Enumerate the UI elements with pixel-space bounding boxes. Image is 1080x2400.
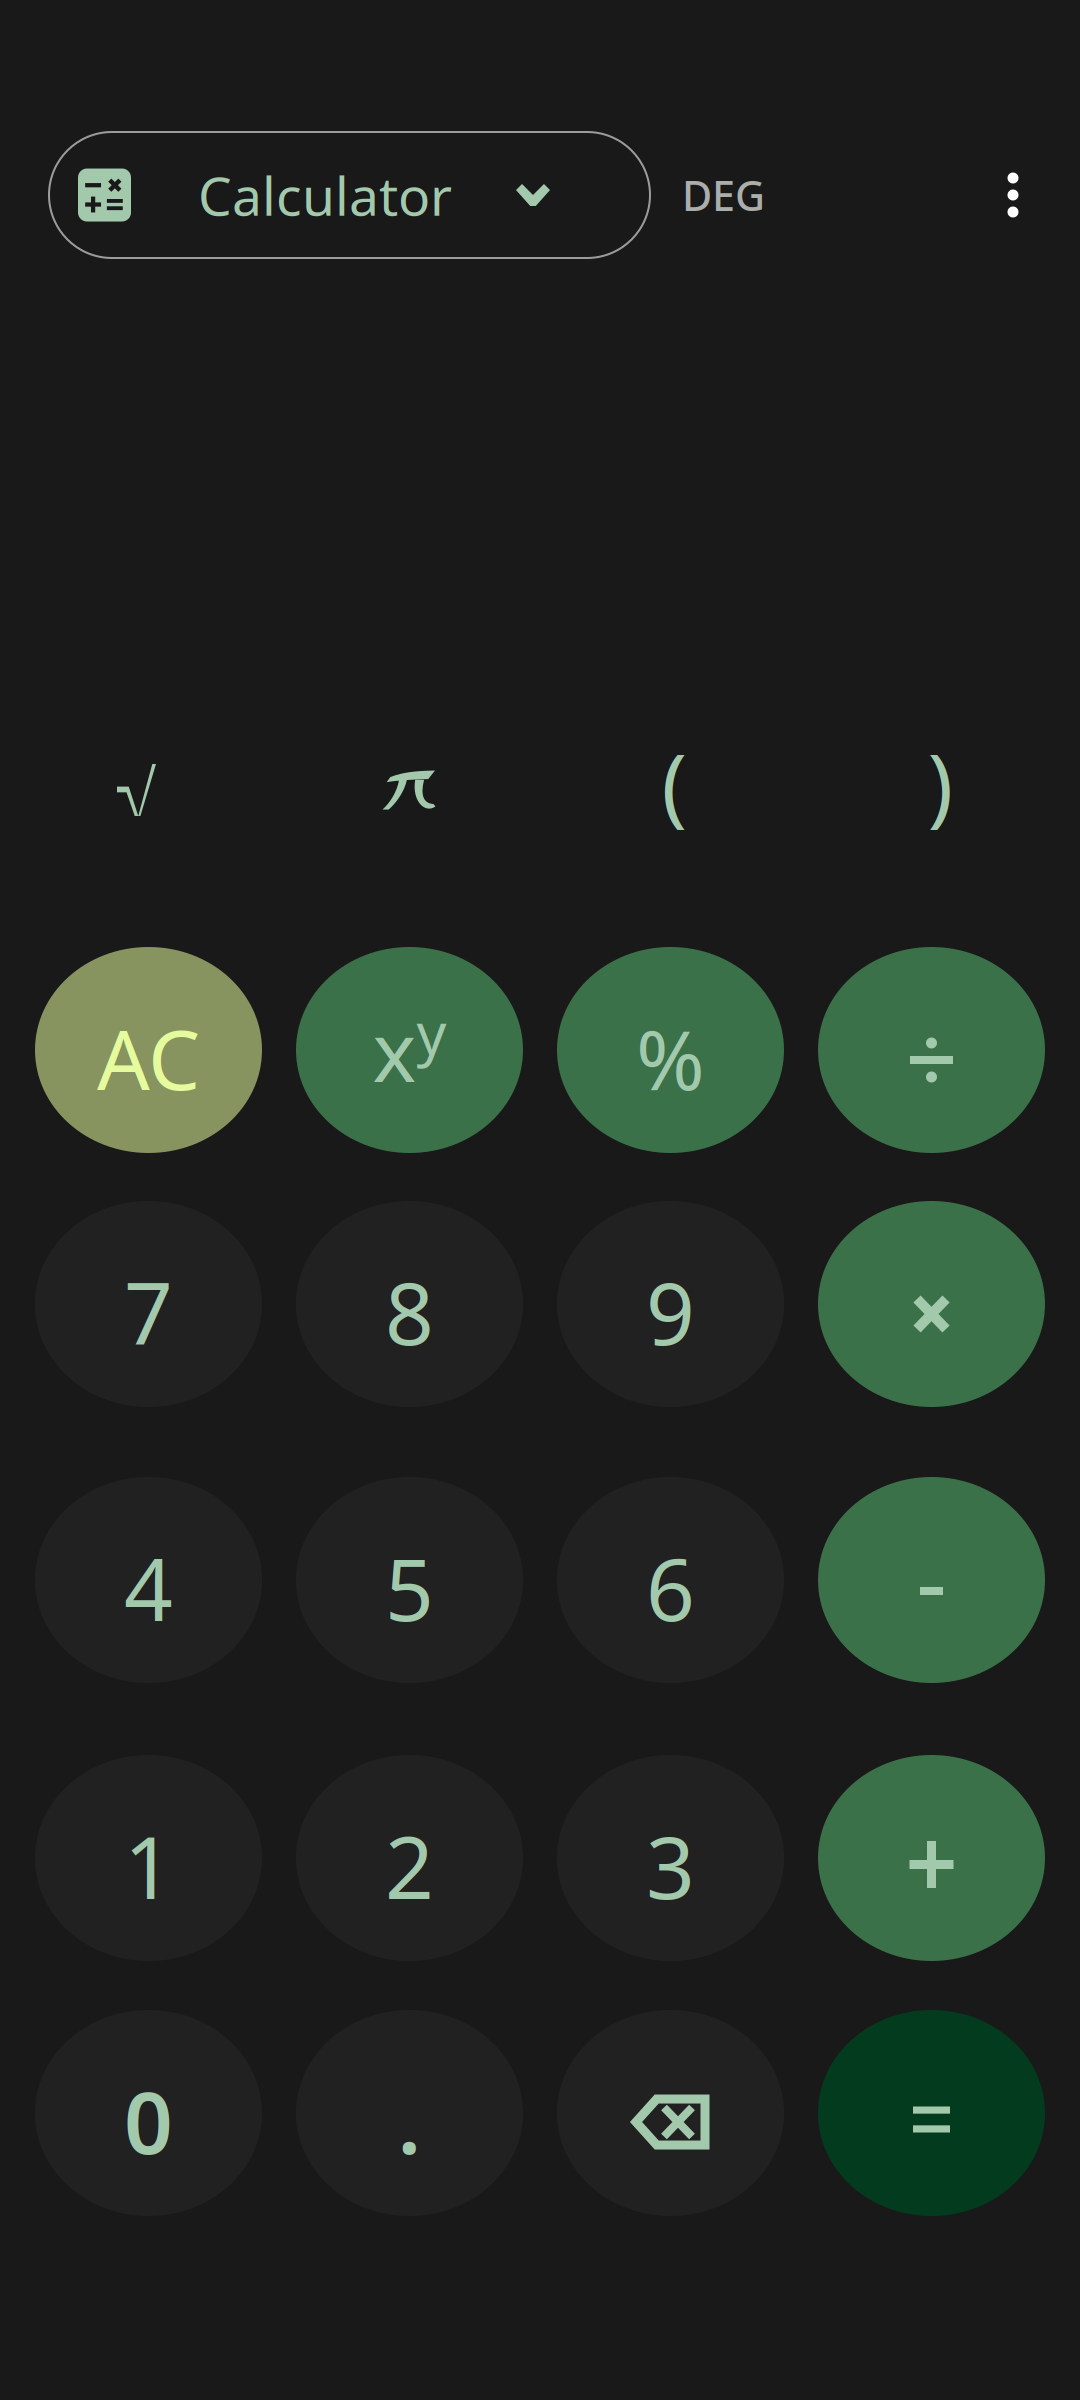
button[interactable]: ( — [557, 690, 784, 890]
button[interactable]: ) — [818, 690, 1045, 890]
staticText: % — [636, 1003, 705, 1113]
button[interactable]: 8 — [296, 1201, 523, 1407]
button[interactable]: 5 — [296, 1477, 523, 1683]
button[interactable]: AC — [35, 947, 262, 1153]
staticText: DEG — [682, 168, 765, 222]
staticText: 9 — [646, 1255, 695, 1369]
button[interactable]: Divide — [818, 947, 1045, 1153]
staticText: Calculator — [198, 160, 452, 230]
staticText: 8 — [385, 1255, 434, 1369]
button[interactable]: Calculator mode — [49, 132, 650, 258]
button[interactable]: Square root — [35, 690, 262, 890]
staticText: 2 — [385, 1809, 434, 1923]
button[interactable]: 2 — [296, 1755, 523, 1961]
button[interactable]: Multiply — [818, 1201, 1045, 1407]
button[interactable]: Plus — [818, 1755, 1045, 1961]
button[interactable]: 3 — [557, 1755, 784, 1961]
staticText: 7 — [124, 1255, 173, 1369]
staticText: ) — [927, 726, 953, 840]
button[interactable]: More options — [978, 132, 1048, 258]
button[interactable]: 0 — [35, 2010, 262, 2216]
button[interactable]: % — [557, 947, 784, 1153]
staticText: y — [416, 993, 446, 1071]
button[interactable]: 4 — [35, 1477, 262, 1683]
button[interactable]: 7 — [35, 1201, 262, 1407]
button[interactable]: . — [296, 2010, 523, 2216]
button[interactable]: Minus — [818, 1477, 1045, 1683]
button[interactable]: Backspace — [557, 2010, 784, 2216]
staticText: . — [397, 2064, 421, 2178]
button[interactable]: Pi — [296, 690, 523, 890]
staticText: x — [372, 995, 416, 1105]
staticText: 6 — [646, 1531, 695, 1645]
button[interactable]: 6 — [557, 1477, 784, 1683]
staticText: 1 — [124, 1809, 173, 1923]
button[interactable]: x to the power of y — [296, 947, 523, 1153]
staticText: ( — [661, 726, 687, 840]
staticText: 4 — [124, 1531, 173, 1645]
staticText: 5 — [385, 1531, 434, 1645]
staticText: 0 — [124, 2064, 173, 2178]
button[interactable]: Equals — [818, 2010, 1045, 2216]
staticText: 3 — [646, 1809, 695, 1923]
button[interactable]: 1 — [35, 1755, 262, 1961]
button[interactable]: 9 — [557, 1201, 784, 1407]
staticText: AC — [97, 1003, 200, 1113]
